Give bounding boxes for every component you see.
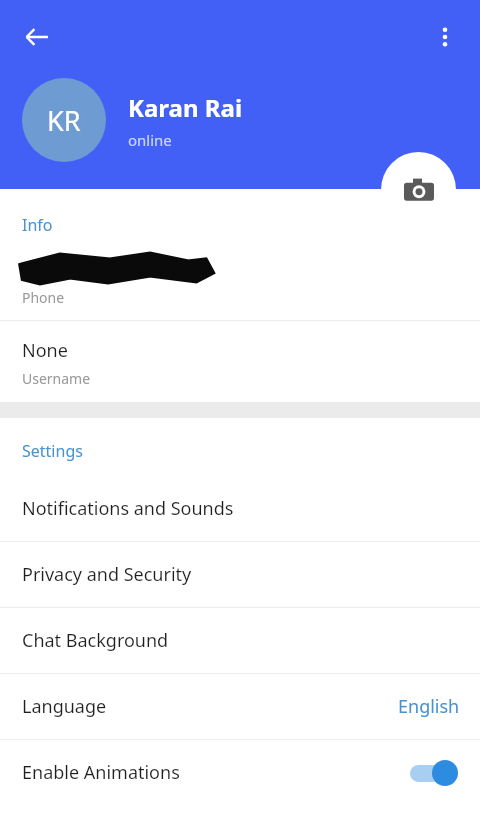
button[interactable]: Privacy and Security (0, 542, 480, 607)
staticText: English (398, 694, 460, 719)
button[interactable]: More options (422, 14, 468, 60)
staticText: Username (22, 369, 91, 388)
button[interactable]: None (0, 321, 480, 402)
button[interactable]: KR (22, 78, 106, 162)
button[interactable]: Phone (0, 252, 480, 320)
staticText: Language (22, 694, 107, 719)
staticText: online (128, 130, 172, 150)
staticText: Phone (22, 288, 65, 307)
staticText: KR (47, 102, 81, 139)
button[interactable]: Change photo (381, 152, 456, 227)
button[interactable]: Chat Background (0, 608, 480, 673)
staticText: Notifications and Sounds (22, 496, 234, 521)
staticText: Chat Background (22, 628, 169, 653)
button[interactable]: Language (0, 674, 480, 739)
button[interactable]: Enable Animations (0, 740, 480, 805)
staticText: Karan Rai (128, 91, 243, 124)
staticText: Enable Animations (22, 760, 180, 785)
staticText: Privacy and Security (22, 562, 192, 587)
staticText: Info (22, 214, 53, 236)
staticText: Settings (22, 440, 83, 462)
staticText: None (22, 338, 68, 363)
button[interactable]: Notifications and Sounds (0, 476, 480, 541)
button[interactable]: Back (14, 14, 60, 60)
